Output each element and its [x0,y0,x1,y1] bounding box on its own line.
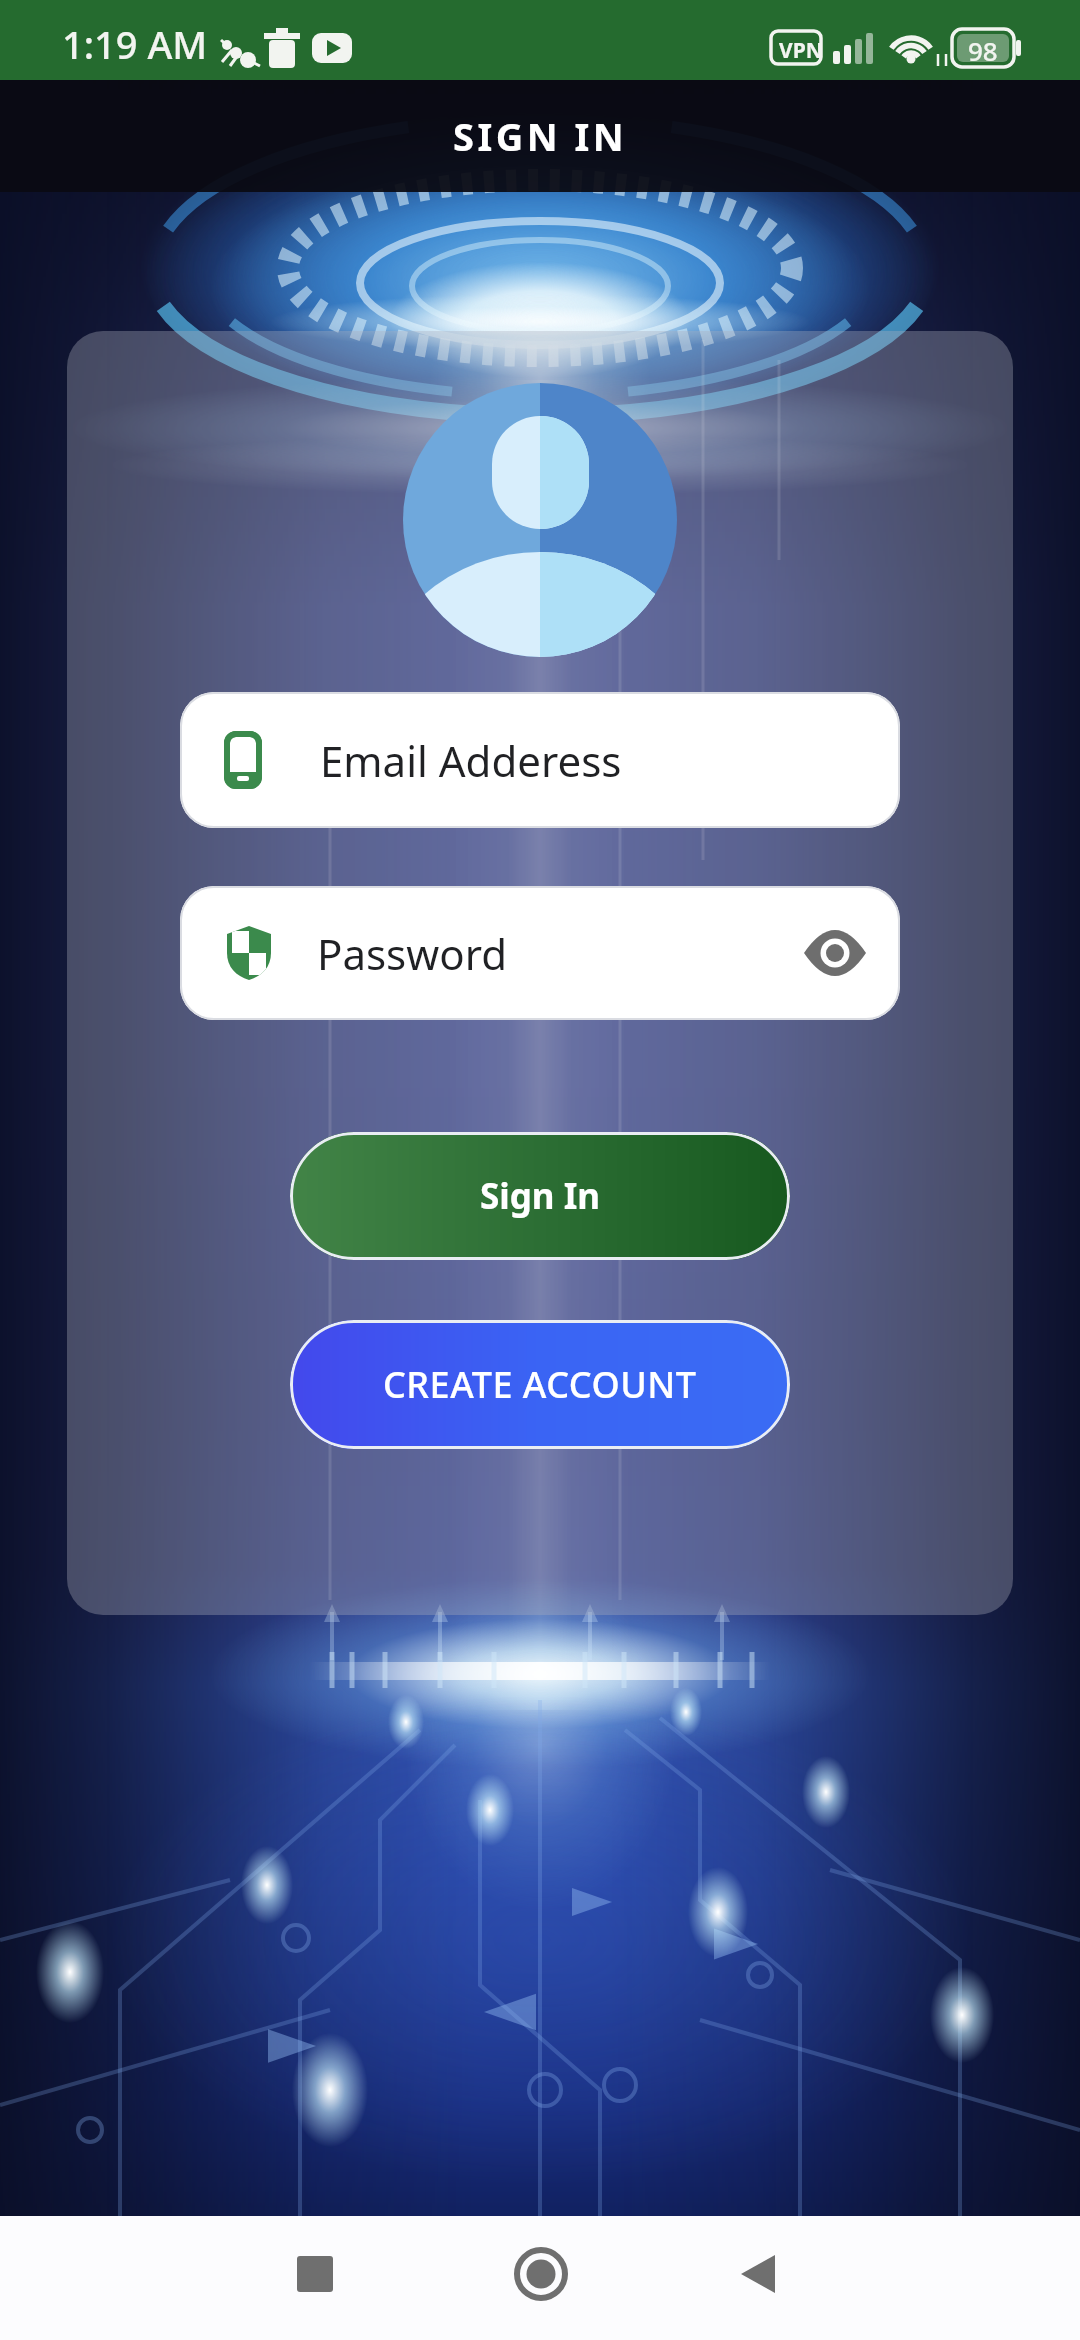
button[interactable] [790,913,880,993]
button[interactable] [716,2229,806,2319]
staticText: SIGN IN [453,110,628,162]
button[interactable]: Sign In [290,1132,790,1260]
button[interactable]: CREATE ACCOUNT [290,1320,790,1449]
staticText: Sign In [480,1172,601,1220]
staticText: Email Adderess [320,732,622,789]
button[interactable]: Email Adderess [180,692,900,828]
button[interactable] [496,2229,586,2319]
staticText: Password [317,925,507,982]
staticText: VPN [779,36,823,65]
staticText: 1:19 AM [62,18,208,70]
button[interactable] [270,2229,360,2319]
staticText: CREATE ACCOUNT [383,1360,697,1409]
staticText: 98 [968,33,998,68]
button[interactable]: Password [180,886,900,1020]
